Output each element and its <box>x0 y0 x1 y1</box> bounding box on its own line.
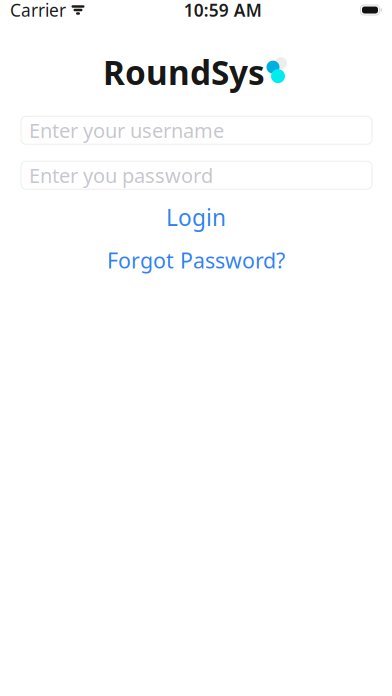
button[interactable]: Login <box>0 200 392 234</box>
button[interactable]: Forgot Password? <box>0 245 392 275</box>
staticText: Login <box>166 202 226 232</box>
staticText: Carrier <box>10 0 66 21</box>
button[interactable]: Enter your username <box>21 116 372 144</box>
staticText: Enter your username <box>29 117 224 144</box>
button[interactable]: Enter you password <box>21 161 372 189</box>
staticText: 10:59 AM <box>184 0 262 21</box>
staticText: RoundSys <box>103 50 265 94</box>
staticText: Enter you password <box>29 162 213 189</box>
staticText: Forgot Password? <box>107 246 285 274</box>
